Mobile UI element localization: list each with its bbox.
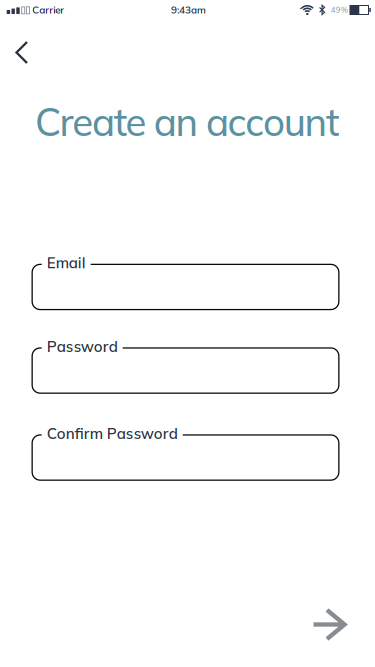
staticText: 49%	[331, 5, 348, 15]
button[interactable]: Confirm Password	[31, 434, 339, 481]
staticText: 9:43am	[171, 3, 206, 16]
staticText: Create an account	[35, 97, 340, 145]
staticText: Carrier	[32, 3, 64, 16]
button[interactable]: Email	[31, 264, 339, 310]
button[interactable]: Password	[31, 347, 339, 394]
button[interactable]: Back	[0, 33, 42, 73]
staticText: Email	[47, 253, 86, 272]
staticText: Password	[47, 337, 118, 356]
staticText: Confirm Password	[47, 424, 178, 443]
button[interactable]: Next	[300, 596, 356, 652]
